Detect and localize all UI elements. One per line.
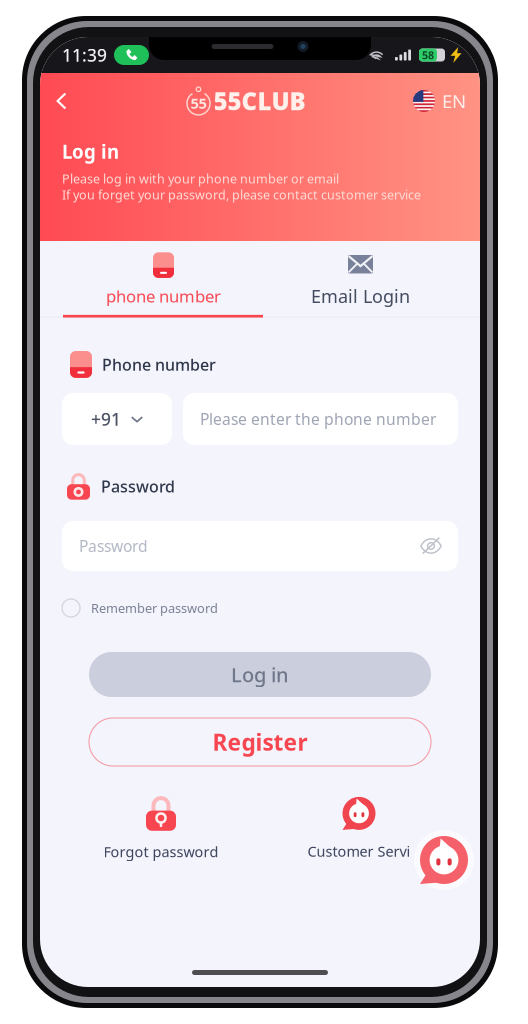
staticText: phone number (106, 285, 221, 307)
button[interactable]: Customer service (413, 829, 475, 891)
button[interactable]: phone number (65, 241, 262, 317)
staticText: Password (101, 476, 175, 497)
staticText: 11:39 (62, 43, 107, 66)
staticText: Phone number (102, 354, 216, 375)
button[interactable]: Register (89, 718, 431, 766)
staticText: +91 (91, 407, 121, 430)
button[interactable]: Remember password (62, 597, 458, 619)
button[interactable]: Forgot password (62, 796, 260, 861)
button[interactable]: Country code +91 (62, 393, 172, 445)
staticText: 55CLUB (213, 85, 305, 117)
staticText: EN (442, 88, 466, 114)
staticText: Password (79, 535, 148, 557)
staticText: Log in (62, 139, 119, 164)
staticText: 55 (190, 93, 206, 113)
staticText: Register (212, 727, 307, 757)
staticText: Email Login (311, 284, 410, 308)
staticText: Customer Servi (307, 841, 410, 861)
button[interactable]: Customer Servi (260, 796, 458, 861)
staticText: Please enter the phone number (200, 408, 436, 430)
button[interactable]: Language: English (413, 79, 480, 123)
button[interactable]: Back (40, 79, 84, 123)
button[interactable]: Password (62, 521, 458, 571)
staticText: Please log in with your phone number or … (62, 170, 339, 187)
staticText: Forgot password (103, 842, 218, 861)
staticText: 58 (422, 48, 434, 62)
button[interactable]: Please enter the phone number (183, 393, 458, 445)
staticText: If you forget your password, please cont… (62, 186, 421, 203)
staticText: Remember password (91, 599, 218, 617)
button[interactable]: Log in (89, 652, 431, 697)
button[interactable]: Email Login (262, 241, 459, 317)
staticText: Log in (231, 661, 289, 688)
